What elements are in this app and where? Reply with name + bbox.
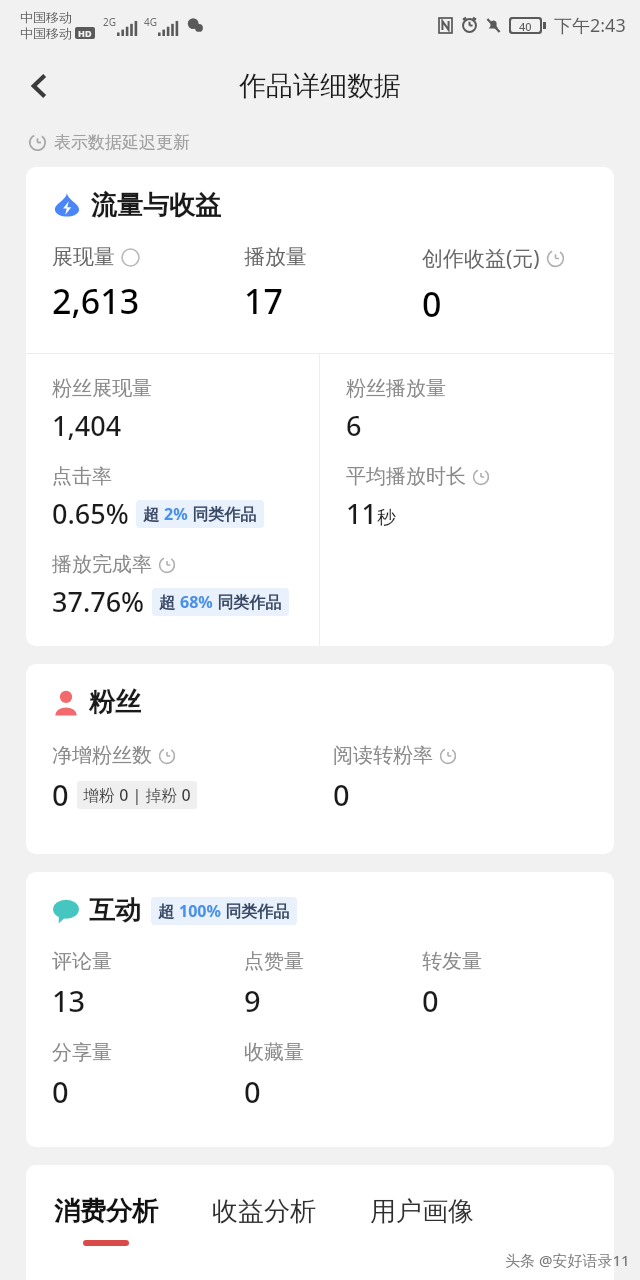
staticText: 2,613 bbox=[52, 278, 140, 324]
staticText: 11 bbox=[346, 495, 377, 532]
staticText: 中国移动 bbox=[20, 9, 72, 25]
staticText: 收益分析 bbox=[212, 1195, 316, 1228]
staticText: 作品详细数据 bbox=[239, 69, 401, 103]
staticText: 9 bbox=[244, 981, 261, 1020]
button[interactable]: 收益分析 bbox=[212, 1195, 316, 1240]
staticText: 17 bbox=[244, 278, 283, 324]
staticText: 展现量 bbox=[52, 244, 115, 270]
staticText: 平均播放时长 bbox=[346, 464, 466, 489]
staticText: 消费分析 bbox=[54, 1195, 158, 1228]
staticText: 粉丝播放量 bbox=[346, 376, 446, 401]
staticText: 0 bbox=[333, 775, 350, 814]
staticText: 评论量 bbox=[52, 949, 112, 974]
staticText: 0 bbox=[244, 1072, 261, 1111]
button[interactable]: 用户画像 bbox=[370, 1195, 474, 1240]
staticText: 粉丝展现量 bbox=[52, 376, 152, 401]
staticText: HD bbox=[78, 27, 92, 39]
staticText: 1,404 bbox=[52, 407, 122, 444]
button[interactable]: Back bbox=[14, 60, 66, 112]
staticText: 增粉 0 | 掉粉 0 bbox=[83, 784, 191, 806]
staticText: 0.65% bbox=[52, 495, 129, 532]
staticText: 点击率 bbox=[52, 464, 112, 489]
button[interactable]: 消费分析 bbox=[54, 1195, 158, 1246]
staticText: 同类作品 bbox=[213, 591, 282, 613]
staticText: 播放完成率 bbox=[52, 552, 152, 577]
staticText: 4G bbox=[144, 15, 157, 29]
staticText: 2% bbox=[164, 503, 188, 525]
staticText: 秒 bbox=[377, 506, 396, 530]
staticText: 播放量 bbox=[244, 244, 307, 270]
staticText: 0 bbox=[422, 281, 442, 327]
staticText: 下午2:43 bbox=[554, 13, 626, 38]
staticText: 头条 @安好语录11 bbox=[505, 1250, 630, 1270]
staticText: 转发量 bbox=[422, 949, 482, 974]
staticText: 超 bbox=[159, 591, 180, 613]
staticText: 37.76% bbox=[52, 583, 145, 620]
staticText: 用户画像 bbox=[370, 1195, 474, 1228]
staticText: 流量与收益 bbox=[91, 189, 221, 222]
staticText: 同类作品 bbox=[221, 900, 290, 922]
staticText: 0 bbox=[52, 1072, 69, 1111]
staticText: 阅读转粉率 bbox=[333, 743, 433, 768]
staticText: 2G bbox=[103, 15, 116, 29]
staticText: 粉丝 bbox=[89, 686, 141, 719]
staticText: 创作收益(元) bbox=[422, 244, 540, 273]
staticText: 100% bbox=[179, 900, 221, 922]
staticText: 6 bbox=[346, 407, 362, 444]
staticText: 点赞量 bbox=[244, 949, 304, 974]
staticText: 0 bbox=[52, 775, 69, 814]
staticText: 收藏量 bbox=[244, 1040, 304, 1065]
staticText: 超 bbox=[143, 503, 164, 525]
staticText: 同类作品 bbox=[188, 503, 257, 525]
staticText: 0 bbox=[422, 981, 439, 1020]
staticText: 净增粉丝数 bbox=[52, 743, 152, 768]
staticText: 分享量 bbox=[52, 1040, 112, 1065]
staticText: 表示数据延迟更新 bbox=[54, 132, 190, 153]
staticText: 互动 bbox=[89, 894, 141, 927]
staticText: 13 bbox=[52, 981, 86, 1020]
staticText: 68% bbox=[180, 591, 213, 613]
staticText: 超 bbox=[158, 900, 179, 922]
staticText: 40 bbox=[519, 19, 532, 32]
staticText: 中国移动 bbox=[20, 25, 72, 41]
